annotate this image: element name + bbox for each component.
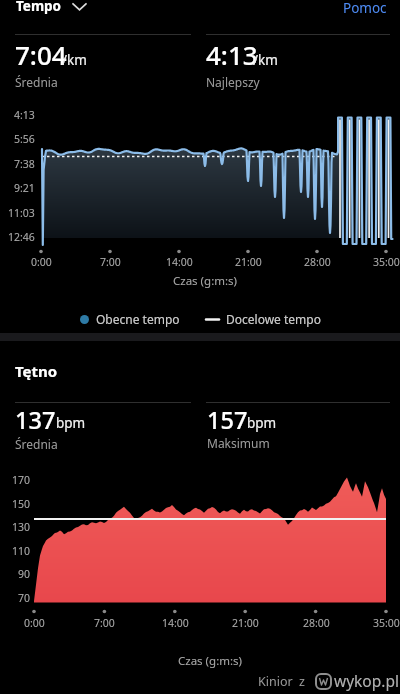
staticText: Czas (g:m:s)	[178, 653, 243, 669]
staticText: 5:56	[14, 132, 35, 146]
staticText: 4:13	[14, 108, 35, 122]
staticText: bpm	[247, 414, 277, 432]
staticText: 0:00	[24, 616, 45, 630]
staticText: Tempo	[16, 0, 62, 15]
staticText: Obecne tempo	[96, 311, 180, 327]
staticText: 12:46	[8, 230, 35, 244]
button[interactable]: Pomoc	[334, 0, 396, 19]
staticText: 21:00	[235, 255, 262, 269]
staticText: 90	[18, 567, 31, 581]
staticText: Średnia	[15, 436, 58, 452]
staticText: 28:00	[303, 616, 330, 630]
staticText: Pomoc	[343, 0, 387, 17]
staticText: 7:38	[14, 157, 35, 171]
staticText: 28:00	[304, 255, 331, 269]
staticText: Tętno	[15, 361, 58, 381]
staticText: 110	[12, 544, 31, 558]
staticText: Docelowe tempo	[226, 311, 321, 327]
staticText: 21:00	[232, 616, 259, 630]
staticText: Kinior	[258, 673, 293, 690]
staticText: Średnia	[15, 74, 58, 90]
staticText: Maksimum	[207, 435, 270, 451]
staticText: 9:21	[14, 181, 35, 195]
staticText: 7:00	[100, 255, 121, 269]
button[interactable]: Tempo	[10, 0, 102, 21]
staticText: 7:04	[15, 37, 67, 72]
staticText: z	[299, 673, 305, 690]
staticText: /km	[253, 51, 278, 69]
staticText: wykop.pl	[334, 670, 399, 691]
staticText: 150	[12, 497, 31, 511]
staticText: 137	[15, 404, 56, 436]
staticText: /km	[62, 51, 87, 69]
staticText: 4:13	[206, 37, 258, 72]
staticText: 70	[18, 591, 31, 605]
staticText: 35:00	[373, 255, 400, 269]
staticText: 11:03	[8, 206, 35, 220]
staticText: Najlepszy	[206, 74, 260, 90]
staticText: 157	[207, 404, 248, 436]
staticText: bpm	[56, 414, 86, 432]
staticText: 130	[12, 520, 31, 534]
staticText: 14:00	[162, 616, 189, 630]
staticText: 170	[12, 473, 31, 487]
staticText: 35:00	[373, 616, 400, 630]
staticText: 0:00	[31, 255, 52, 269]
staticText: 14:00	[166, 255, 193, 269]
staticText: Czas (g:m:s)	[173, 273, 238, 289]
staticText: 7:00	[94, 616, 115, 630]
